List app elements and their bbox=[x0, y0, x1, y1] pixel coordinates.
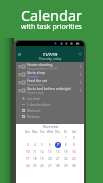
staticText: 8 bbox=[65, 143, 67, 147]
staticText: Go to shop bbox=[27, 70, 45, 75]
staticText: 27 bbox=[48, 164, 52, 168]
button[interactable]: List item bbox=[16, 95, 84, 101]
staticText: 9 bbox=[73, 143, 75, 147]
staticText: 24 bbox=[26, 164, 30, 168]
staticText: 28 bbox=[56, 164, 60, 168]
staticText: Go to bed before midnight bbox=[27, 86, 71, 91]
staticText: 6 bbox=[49, 143, 51, 147]
staticText: Repeats daily bbox=[27, 91, 44, 95]
staticText: Webinar bbox=[27, 114, 40, 118]
staticText: Calendar bbox=[0, 5, 103, 25]
staticText: November bbox=[43, 125, 59, 129]
button[interactable]: 26 bbox=[38, 162, 46, 169]
staticText: Mon bbox=[32, 130, 38, 134]
staticText: 21 bbox=[56, 157, 60, 161]
button[interactable]: 27 bbox=[46, 162, 54, 169]
staticText: Wed bbox=[47, 130, 53, 134]
staticText: List item bbox=[27, 96, 41, 100]
button[interactable]: 19 bbox=[38, 155, 46, 162]
button[interactable]: 21 bbox=[54, 155, 62, 162]
staticText: 13 bbox=[48, 150, 52, 154]
staticText: 17 bbox=[26, 157, 30, 161]
button[interactable]: 17 bbox=[24, 155, 31, 162]
staticText: Feed the cat bbox=[27, 78, 48, 83]
staticText: Thursday, today bbox=[16, 57, 84, 61]
button[interactable]: 11 bbox=[31, 148, 38, 155]
staticText: Repeats daily bbox=[27, 83, 44, 86]
staticText: 30 bbox=[72, 164, 76, 168]
staticText: 26 bbox=[40, 164, 44, 168]
staticText: 19 bbox=[40, 157, 44, 161]
button[interactable]: 15 bbox=[62, 148, 70, 155]
button[interactable]: Search bbox=[79, 53, 82, 56]
staticText: Workout bbox=[27, 108, 41, 112]
button[interactable]: 8 bbox=[62, 141, 70, 148]
button[interactable]: 12 bbox=[38, 148, 46, 155]
button[interactable]: 24 bbox=[24, 162, 31, 169]
staticText: Sat bbox=[72, 130, 77, 134]
staticText: 11/7/19 bbox=[16, 52, 84, 57]
staticText: 23 bbox=[72, 157, 76, 161]
staticText: 14 bbox=[56, 150, 60, 154]
button[interactable]: 18 bbox=[31, 155, 38, 162]
button[interactable]: 14 bbox=[54, 148, 62, 155]
staticText: 2 bbox=[73, 136, 75, 140]
button[interactable]: Webinar bbox=[16, 113, 84, 119]
button[interactable]: Go to shop bbox=[16, 70, 84, 78]
button[interactable]: 20 bbox=[46, 155, 54, 162]
button[interactable]: Workout bbox=[16, 107, 84, 113]
staticText: with task priorities bbox=[0, 22, 103, 32]
staticText: 20 bbox=[48, 157, 52, 161]
button[interactable]: 6 bbox=[46, 141, 54, 148]
staticText: 1 checked item bbox=[27, 102, 51, 106]
staticText: Sun bbox=[25, 130, 30, 134]
button[interactable]: 28 bbox=[54, 162, 62, 169]
button[interactable]: 22 bbox=[62, 155, 70, 162]
staticText: Postponed from 11/6/19 bbox=[27, 67, 58, 70]
button[interactable]: Feed the cat bbox=[16, 78, 84, 86]
button[interactable]: 10 bbox=[24, 148, 31, 155]
button[interactable]: Menu bbox=[18, 53, 21, 56]
staticText: Overdue! bbox=[27, 75, 39, 78]
staticText: Tue bbox=[40, 130, 45, 134]
staticText: 7 bbox=[57, 143, 59, 147]
staticText: 4 bbox=[34, 143, 36, 147]
button[interactable]: House cleaning bbox=[16, 62, 84, 70]
button[interactable]: 9 bbox=[70, 141, 78, 148]
staticText: 22 bbox=[64, 157, 68, 161]
button[interactable]: 13 bbox=[46, 148, 54, 155]
button[interactable]: 4 bbox=[31, 141, 38, 148]
button[interactable]: 25 bbox=[31, 162, 38, 169]
button[interactable]: Go to bed before midnight bbox=[16, 86, 84, 95]
staticText: 10 bbox=[26, 150, 30, 154]
button[interactable]: 2 bbox=[70, 134, 78, 141]
button[interactable]: 29 bbox=[62, 162, 70, 169]
staticText: Thu bbox=[55, 130, 61, 134]
button[interactable]: 3 bbox=[24, 141, 31, 148]
button[interactable]: 16 bbox=[70, 148, 78, 155]
staticText: 5 bbox=[41, 143, 43, 147]
button[interactable]: 1 checked item bbox=[16, 101, 84, 107]
staticText: 3 bbox=[27, 143, 29, 147]
button[interactable]: 5 bbox=[38, 141, 46, 148]
staticText: 15 bbox=[64, 150, 68, 154]
staticText: 16 bbox=[72, 150, 76, 154]
staticText: 18 bbox=[33, 157, 37, 161]
staticText: Fri bbox=[64, 130, 68, 134]
staticText: 1 bbox=[65, 136, 67, 140]
button[interactable]: 7 bbox=[54, 141, 62, 148]
staticText: 12 bbox=[40, 150, 44, 154]
staticText: 29 bbox=[64, 164, 68, 168]
staticText: 11 bbox=[33, 150, 37, 154]
staticText: 25 bbox=[33, 164, 37, 168]
button[interactable]: 23 bbox=[70, 155, 78, 162]
button[interactable]: 30 bbox=[70, 162, 78, 169]
staticText: House cleaning bbox=[27, 62, 53, 67]
button[interactable]: 1 bbox=[62, 134, 70, 141]
